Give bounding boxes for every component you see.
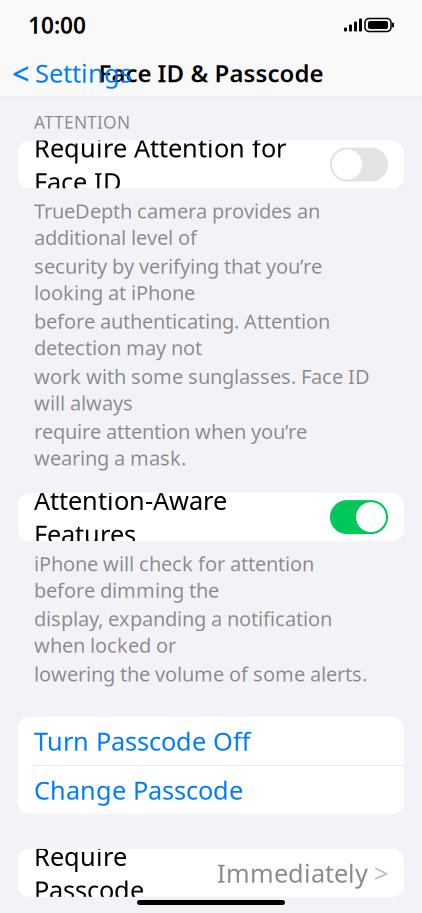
staticText: Settings: [35, 56, 132, 90]
staticText: >: [374, 856, 388, 890]
staticText: ATTENTION: [34, 110, 130, 133]
button[interactable]: Change Passcode: [18, 766, 404, 814]
staticText: lowering the volume of some alerts.: [34, 660, 367, 687]
staticText: work with some sunglasses. Face ID will …: [34, 363, 370, 416]
button[interactable]: Require Passcode: [18, 849, 404, 897]
staticText: Turn Passcode Off: [34, 724, 250, 758]
button[interactable]: Turn Passcode Off: [18, 717, 404, 765]
staticText: Attention-Aware Features: [34, 483, 227, 551]
button[interactable]: Attention-Aware Features: [18, 493, 404, 541]
staticText: TrueDepth camera provides an additional …: [34, 197, 320, 251]
staticText: Change Passcode: [34, 773, 243, 807]
staticText: Require Passcode: [34, 839, 144, 907]
staticText: iPhone will check for attention before d…: [34, 550, 314, 603]
staticText: security by verifying that you’re lookin…: [34, 253, 322, 306]
staticText: Face ID & Passcode: [98, 57, 323, 89]
staticText: before authenticating. Attention detecti…: [34, 308, 330, 361]
button[interactable]: <: [0, 51, 144, 95]
staticText: require attention when you’re wearing a …: [34, 418, 307, 471]
staticText: display, expanding a notification when l…: [34, 605, 332, 658]
staticText: 10:00: [28, 10, 86, 40]
button[interactable]: Require Attention for Face ID: [18, 140, 404, 188]
staticText: [362, 18, 365, 32]
staticText: <: [12, 53, 30, 93]
staticText: Require Attention for Face ID: [34, 131, 286, 198]
staticText: Immediately: [217, 856, 368, 890]
